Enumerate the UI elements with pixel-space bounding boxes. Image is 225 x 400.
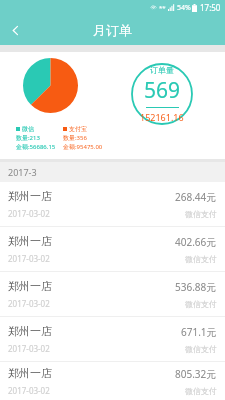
- staticText: 54%: [177, 3, 191, 13]
- button[interactable]: 郑州一店: [0, 227, 225, 272]
- staticText: **: [159, 4, 166, 12]
- staticText: 微信支付: [185, 209, 217, 219]
- staticText: 支付宝: [69, 125, 87, 133]
- staticText: 郑州一店: [8, 279, 52, 293]
- staticText: 152161.16: [140, 111, 184, 123]
- staticText: 郑州一店: [8, 189, 52, 203]
- button[interactable]: 郑州一店: [0, 182, 225, 227]
- staticText: 微信: [22, 125, 34, 133]
- staticText: 郑州一店: [8, 324, 52, 338]
- staticText: 微信支付: [185, 386, 217, 396]
- staticText: 微信支付: [185, 299, 217, 309]
- staticText: 402.66元: [175, 235, 217, 249]
- staticText: 2017-3: [8, 166, 37, 178]
- staticText: 2017-03-02: [8, 385, 50, 396]
- staticText: 805.32元: [175, 367, 217, 381]
- staticText: 月订单: [93, 22, 132, 38]
- staticText: 数量:213: [16, 134, 40, 142]
- staticText: 郑州一店: [8, 234, 52, 248]
- staticText: 郑州一店: [8, 366, 52, 380]
- button[interactable]: 郑州一店: [0, 362, 225, 400]
- staticText: 2017-03-02: [8, 208, 50, 219]
- staticText: 微信支付: [185, 254, 217, 264]
- staticText: 2017-03-02: [8, 343, 50, 354]
- button[interactable]: 郑州一店: [0, 272, 225, 317]
- staticText: 微信支付: [185, 344, 217, 354]
- staticText: 金额:95475.00: [63, 143, 103, 151]
- staticText: 671.1元: [181, 325, 217, 339]
- staticText: 569: [144, 76, 181, 105]
- staticText: 订单量: [150, 65, 174, 75]
- staticText: 2017-03-02: [8, 298, 50, 309]
- staticText: 268.44元: [175, 190, 217, 204]
- staticText: 数量:356: [63, 134, 87, 142]
- staticText: 536.88元: [175, 280, 217, 294]
- button[interactable]: 郑州一店: [0, 317, 225, 362]
- staticText: 金额:56686.15: [16, 143, 56, 151]
- button[interactable]: Back: [0, 15, 30, 45]
- staticText: 2017-03-02: [8, 253, 50, 264]
- staticText: 17:50: [200, 2, 221, 13]
